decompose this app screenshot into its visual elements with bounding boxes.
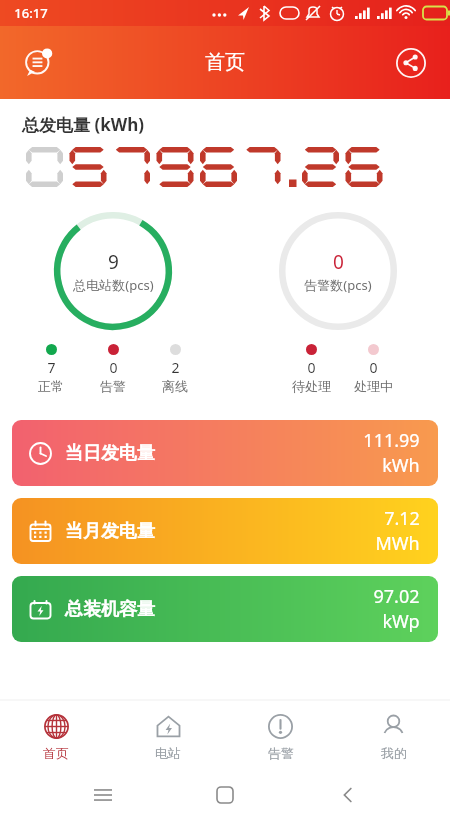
staticText: 我的 xyxy=(381,745,407,761)
staticText: 总发电量 (kWh) xyxy=(22,113,144,136)
button[interactable]: Home xyxy=(205,775,245,815)
button[interactable]: 当日发电量 xyxy=(12,420,438,486)
button[interactable]: 当月发电量 xyxy=(12,498,438,564)
button[interactable]: 我的 xyxy=(337,700,450,772)
button[interactable]: 0 xyxy=(342,344,404,394)
staticText: 处理中 xyxy=(354,378,393,394)
staticText: MWh xyxy=(375,531,420,556)
button[interactable]: 7 xyxy=(20,344,82,394)
button[interactable]: Share xyxy=(388,40,434,86)
staticText: 97.02 xyxy=(373,584,420,609)
staticText: 7 xyxy=(47,358,56,377)
staticText: 离线 xyxy=(162,378,188,394)
staticText: 0 xyxy=(369,358,378,377)
button[interactable]: 0 xyxy=(277,210,399,332)
staticText: 告警 xyxy=(100,378,126,394)
staticText: 告警 xyxy=(268,745,294,761)
staticText: 总电站数(pcs) xyxy=(73,276,154,294)
button[interactable]: 9 xyxy=(52,210,174,332)
staticText: 0 xyxy=(333,249,344,275)
button[interactable]: Menu xyxy=(83,775,123,815)
staticText: 16:17 xyxy=(14,4,48,22)
staticText: 当日发电量 xyxy=(65,442,155,465)
staticText: 告警数(pcs) xyxy=(304,276,372,294)
button[interactable]: 0 xyxy=(82,344,144,394)
staticText: 待处理 xyxy=(292,378,331,394)
staticText: kWh xyxy=(382,453,420,478)
button[interactable]: 首页 xyxy=(0,700,112,772)
button[interactable]: 告警 xyxy=(224,700,337,772)
button[interactable]: 2 xyxy=(144,344,206,394)
staticText: 2 xyxy=(171,358,180,377)
staticText: 正常 xyxy=(38,378,64,394)
staticText: 7.12 xyxy=(384,506,420,531)
button[interactable]: 总装机容量 xyxy=(12,576,438,642)
button[interactable]: 电站 xyxy=(112,700,224,772)
button[interactable]: 0 xyxy=(280,344,342,394)
staticText: 电站 xyxy=(155,745,181,761)
staticText: 9 xyxy=(108,249,119,275)
staticText: 首页 xyxy=(205,50,245,75)
staticText: 首页 xyxy=(43,745,69,761)
staticText: 0 xyxy=(307,358,316,377)
staticText: kWp xyxy=(382,609,420,634)
staticText: 111.99 xyxy=(363,428,420,453)
button[interactable]: Messages xyxy=(16,40,62,86)
staticText: 0 xyxy=(109,358,118,377)
staticText: 总装机容量 xyxy=(65,598,155,621)
button[interactable]: Back xyxy=(328,775,368,815)
staticText: 当月发电量 xyxy=(65,520,155,543)
